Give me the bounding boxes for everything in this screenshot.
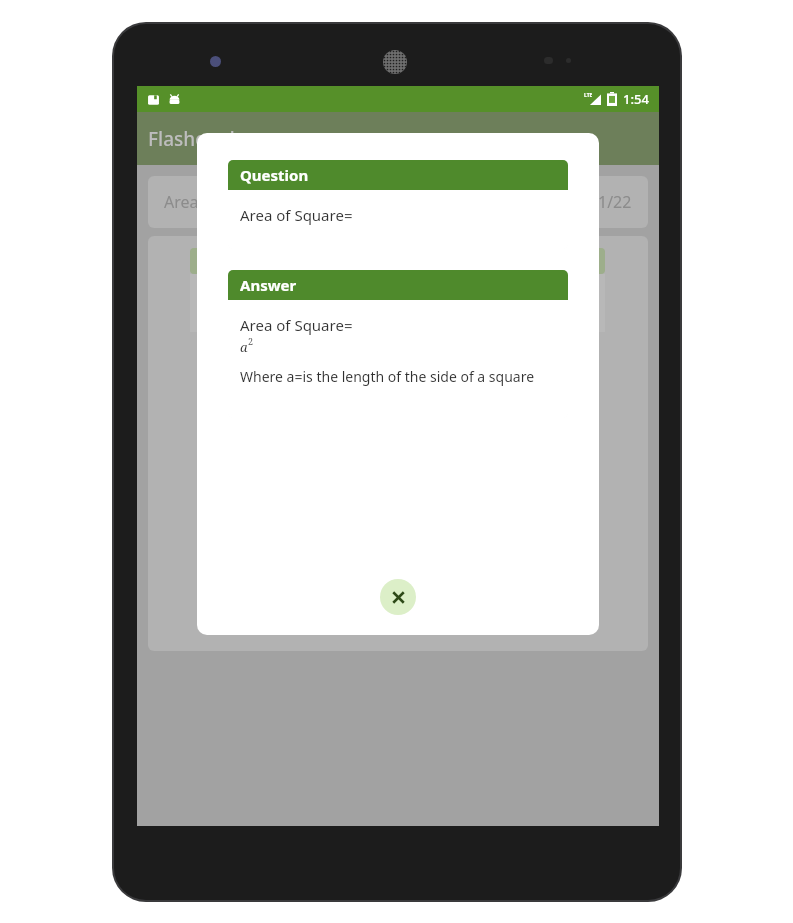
button[interactable]: Action 2 [376,567,420,611]
staticText: Question [240,165,309,185]
staticText: Flashcards [148,126,245,152]
staticText: Area of Square= [200,288,313,308]
staticText: Where a=is the length of the side of a s… [240,367,535,386]
staticText: a [240,338,248,356]
staticText: 1:54 [623,90,649,108]
staticText: LTE [584,92,593,99]
staticText: 2 [248,335,254,347]
staticText: Answer [240,275,297,295]
staticText: Area of Square [164,191,275,213]
button[interactable]: Close [380,579,416,615]
staticText: Area of Square= [240,315,353,335]
staticText: Area of Square= [240,205,353,225]
staticText: 1/22 [598,191,632,213]
